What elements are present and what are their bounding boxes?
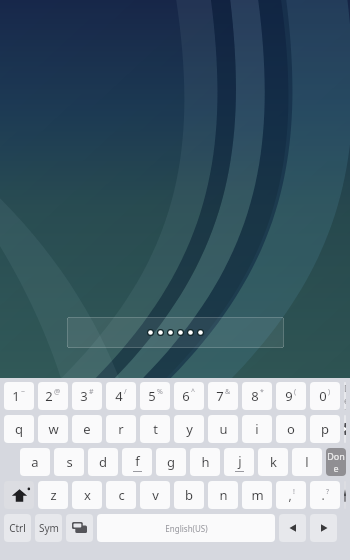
button[interactable]: English(US) [97, 514, 275, 542]
staticText: v [152, 486, 159, 504]
staticText: 0 [319, 387, 327, 405]
button[interactable]: . [310, 481, 340, 509]
staticText: 7 [216, 387, 224, 405]
button[interactable]: Shift [344, 481, 346, 509]
staticText: g [167, 453, 175, 471]
staticText: 8 [251, 387, 259, 405]
button[interactable]: o [276, 415, 306, 443]
button[interactable]: 4 [106, 382, 136, 410]
button[interactable]: Sym [35, 514, 62, 542]
staticText: p [321, 420, 329, 438]
staticText: @ [54, 387, 61, 397]
button[interactable]: d [88, 448, 118, 476]
button[interactable]: n [208, 481, 238, 509]
button[interactable]: m [242, 481, 272, 509]
button[interactable]: Backspace [344, 415, 346, 443]
staticText: ~ [21, 387, 26, 397]
staticText: y [186, 420, 193, 438]
button[interactable]: f [122, 448, 152, 476]
button[interactable]: Ctrl [4, 514, 31, 542]
button[interactable]: x [72, 481, 102, 509]
button[interactable]: 9 [276, 382, 306, 410]
staticText: 2 [45, 387, 53, 405]
staticText: / [124, 387, 127, 397]
button[interactable]: s [54, 448, 84, 476]
staticText: ? [326, 487, 330, 497]
staticText: t [153, 420, 158, 438]
staticText: m [251, 486, 264, 504]
staticText: . [321, 487, 325, 503]
staticText: a [31, 453, 39, 471]
staticText: Del [344, 382, 346, 410]
staticText: e [83, 420, 91, 438]
button[interactable]: w [38, 415, 68, 443]
button[interactable]: b [174, 481, 204, 509]
button[interactable]: h [190, 448, 220, 476]
staticText: f [135, 452, 140, 470]
staticText: Done [326, 450, 346, 474]
staticText: 4 [115, 387, 123, 405]
staticText: 5 [148, 387, 156, 405]
button[interactable]: 1 [4, 382, 34, 410]
staticText: Sym [39, 521, 59, 535]
button[interactable]: e [72, 415, 102, 443]
staticText: # [89, 387, 94, 397]
button[interactable]: k [258, 448, 288, 476]
button[interactable]: j [224, 448, 254, 476]
button[interactable]: g [156, 448, 186, 476]
staticText: Ctrl [9, 521, 26, 535]
staticText: 9 [285, 387, 293, 405]
button[interactable]: Switch keyboard [66, 514, 93, 542]
staticText: u [219, 420, 228, 438]
staticText: n [219, 486, 228, 504]
button[interactable]: p [310, 415, 340, 443]
button[interactable]: 2 [38, 382, 68, 410]
staticText: ^ [191, 387, 196, 397]
button[interactable]: t [140, 415, 170, 443]
staticText: % [157, 387, 163, 397]
staticText: k [270, 453, 277, 471]
button[interactable]: v [140, 481, 170, 509]
staticText: d [99, 453, 107, 471]
staticText: z [50, 486, 57, 504]
button[interactable] [67, 317, 284, 348]
staticText: 6 [182, 387, 190, 405]
button[interactable]: r [106, 415, 136, 443]
button[interactable]: q [4, 415, 34, 443]
button[interactable]: c [106, 481, 136, 509]
staticText: c [118, 486, 125, 504]
staticText: h [201, 453, 210, 471]
staticText: r [118, 420, 124, 438]
staticText: w [48, 420, 59, 438]
staticText: x [84, 486, 91, 504]
button[interactable]: 8 [242, 382, 272, 410]
button[interactable]: , [276, 481, 306, 509]
staticText: j [238, 452, 242, 470]
button[interactable]: Done [326, 448, 346, 476]
button[interactable]: 6 [174, 382, 204, 410]
button[interactable]: 0 [310, 382, 340, 410]
staticText: s [66, 453, 73, 471]
staticText: * [260, 387, 264, 397]
button[interactable]: Del [344, 382, 346, 410]
button[interactable]: l [292, 448, 322, 476]
staticText: q [15, 420, 23, 438]
button[interactable]: Move cursor right [310, 514, 337, 542]
staticText: i [255, 420, 259, 438]
staticText: ! [293, 487, 295, 497]
button[interactable]: i [242, 415, 272, 443]
staticText: o [287, 420, 295, 438]
button[interactable]: u [208, 415, 238, 443]
button[interactable]: Shift [4, 481, 34, 509]
staticText: , [288, 487, 292, 503]
staticText: ) [328, 387, 331, 397]
button[interactable]: z [38, 481, 68, 509]
button[interactable]: 3 [72, 382, 102, 410]
button[interactable]: Move cursor left [279, 514, 306, 542]
button[interactable]: 5 [140, 382, 170, 410]
staticText: & [225, 387, 231, 397]
staticText: ( [294, 387, 297, 397]
button[interactable]: a [20, 448, 50, 476]
button[interactable]: 7 [208, 382, 238, 410]
button[interactable]: y [174, 415, 204, 443]
